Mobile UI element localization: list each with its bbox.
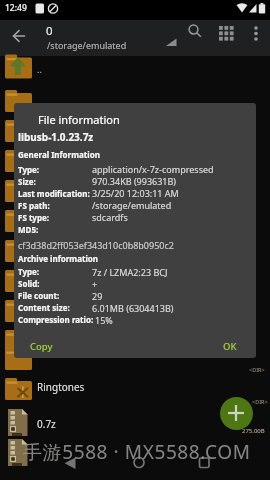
staticText: <DIR> <box>249 366 265 373</box>
staticText: 7z / LZMA2:23 BCJ <box>92 266 168 278</box>
staticText: Solid: <box>18 278 40 289</box>
staticText: 970.34KB (993631B) <box>92 175 177 187</box>
staticText: application/x-7z-compressed <box>92 163 214 175</box>
button[interactable] <box>220 397 253 430</box>
staticText: 手游5588 · MX5588.COM <box>23 439 251 465</box>
button[interactable]: Ringtones <box>0 0 48 14</box>
staticText: General Information <box>18 149 100 160</box>
staticText: Compression ratio: <box>18 314 94 325</box>
staticText: cf3d38d2ff053ef343d10c0b8b0950c2 <box>18 239 174 251</box>
button[interactable] <box>55 452 95 478</box>
staticText: 3/25/20 12:03:11 AM <box>92 187 179 199</box>
staticText: libusb-1.0.23.7z <box>18 130 94 144</box>
staticText: Archive information <box>18 253 99 264</box>
staticText: 275.00B <box>242 427 265 435</box>
staticText: 0 <box>46 23 53 39</box>
button[interactable] <box>181 452 221 478</box>
button[interactable] <box>216 22 237 40</box>
button[interactable] <box>6 26 32 46</box>
staticText: Type: <box>18 266 40 277</box>
staticText: Last modification: <box>18 188 90 199</box>
staticText: <DIR> <box>252 398 268 405</box>
staticText: Content size: <box>18 302 70 313</box>
button[interactable]: 0.7z <box>0 0 19 14</box>
staticText: + <box>92 278 98 290</box>
staticText: /storage/emulated <box>47 39 127 51</box>
staticText: 6.01MB (6304413B) <box>92 302 174 314</box>
staticText: File count: <box>18 290 60 301</box>
button[interactable] <box>246 22 266 42</box>
staticText: Type: <box>18 164 40 175</box>
button[interactable] <box>183 22 204 40</box>
staticText: Copy <box>30 340 53 353</box>
button[interactable]: Copy <box>22 334 72 354</box>
staticText: sdcardfs <box>92 211 128 223</box>
staticText: OK <box>223 340 237 353</box>
staticText: /storage/emulated <box>92 199 172 211</box>
staticText: Size: <box>18 176 36 187</box>
staticText: FS type: <box>18 212 49 223</box>
button[interactable]: OK <box>214 334 252 354</box>
staticText: 15% <box>95 314 113 326</box>
staticText: FS path: <box>18 200 50 211</box>
staticText: MD5: <box>18 224 39 235</box>
button[interactable] <box>116 452 156 478</box>
staticText: File information <box>38 112 120 127</box>
staticText: 29 <box>92 290 103 302</box>
staticText: 12:49 <box>5 2 27 14</box>
